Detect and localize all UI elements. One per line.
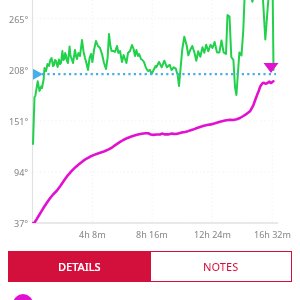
staticText: 208° — [9, 64, 29, 76]
button[interactable]: DETAILS — [8, 251, 150, 282]
staticText: 12h 24m — [194, 228, 231, 240]
button[interactable]: NOTES — [150, 251, 292, 282]
staticText: 8h 16m — [136, 228, 168, 240]
staticText: 151° — [9, 115, 29, 127]
staticText: DETAILS — [58, 259, 101, 274]
staticText: 4h 8m — [79, 228, 106, 240]
staticText: 265° — [9, 13, 29, 25]
staticText: 16h 32m — [254, 228, 291, 240]
staticText: NOTES — [203, 259, 239, 274]
other: Probe 1 legend — [13, 294, 33, 300]
staticText: 37° — [14, 217, 29, 229]
staticText: 94° — [14, 166, 29, 178]
